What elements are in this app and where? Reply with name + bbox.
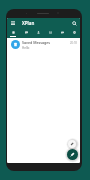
button[interactable]: All [7, 28, 20, 38]
button[interactable]: Chats [20, 28, 32, 38]
button[interactable]: Bots [68, 28, 80, 38]
button[interactable]: Personal [32, 28, 44, 38]
staticText: XPlan [22, 20, 35, 26]
button[interactable]: Groups [44, 28, 56, 38]
button[interactable]: Channels [56, 28, 68, 38]
staticText: Hello [22, 46, 30, 50]
button[interactable]: Menu [10, 20, 16, 26]
button[interactable]: Search [70, 19, 78, 27]
button[interactable]: Saved Messages [7, 38, 80, 51]
button[interactable]: Compose message [68, 140, 76, 148]
staticText: Saved Messages [22, 40, 51, 45]
button[interactable]: New chat [67, 149, 78, 160]
staticText: 20:18 [70, 41, 77, 45]
